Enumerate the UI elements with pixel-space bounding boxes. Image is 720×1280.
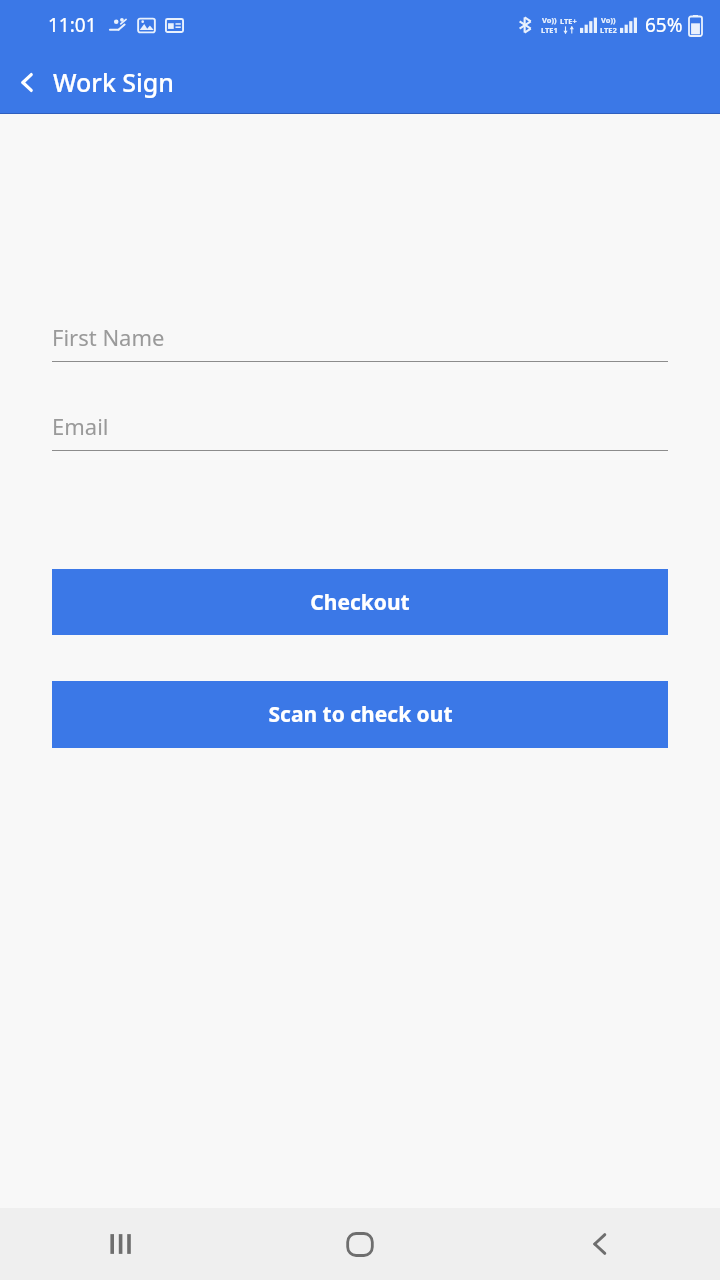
staticText: LTE1 [541, 25, 558, 35]
button[interactable]: Recent apps [0, 1208, 240, 1280]
button[interactable]: First Name [52, 304, 668, 362]
staticText: 65% [645, 12, 683, 38]
staticText: Work Sign [53, 65, 175, 99]
button[interactable]: Back [10, 65, 44, 99]
staticText: LTE2 [600, 25, 617, 35]
staticText: Vo)) [601, 15, 616, 25]
staticText: Vo)) [542, 15, 557, 25]
button[interactable]: Home [240, 1208, 480, 1280]
button[interactable]: Email [52, 393, 668, 451]
staticText: 11:01 [48, 12, 97, 38]
button[interactable]: Checkout [52, 569, 668, 635]
staticText: Email [52, 411, 109, 441]
button[interactable]: Scan to check out [52, 681, 668, 748]
staticText: Scan to check out [268, 700, 453, 729]
staticText: First Name [52, 322, 165, 352]
staticText: LTE+ [560, 16, 577, 26]
staticText: Checkout [310, 588, 410, 617]
button[interactable]: Back [480, 1208, 720, 1280]
